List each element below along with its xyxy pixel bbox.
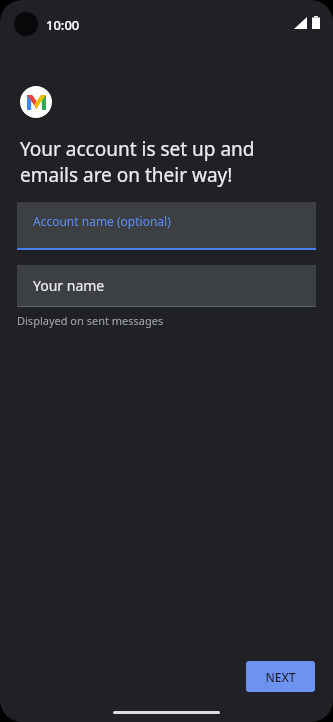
staticText: Your account is set up and emails are on… xyxy=(20,136,255,188)
button[interactable]: Your name xyxy=(17,265,316,307)
button[interactable]: Account name (optional) xyxy=(17,202,316,250)
staticText: Your name xyxy=(33,276,105,295)
staticText: Account name (optional) xyxy=(33,213,171,229)
staticText: NEXT xyxy=(265,669,296,685)
button[interactable]: NEXT xyxy=(246,661,315,692)
staticText: Displayed on sent messages xyxy=(17,313,164,328)
staticText: 10:00 xyxy=(46,16,80,34)
